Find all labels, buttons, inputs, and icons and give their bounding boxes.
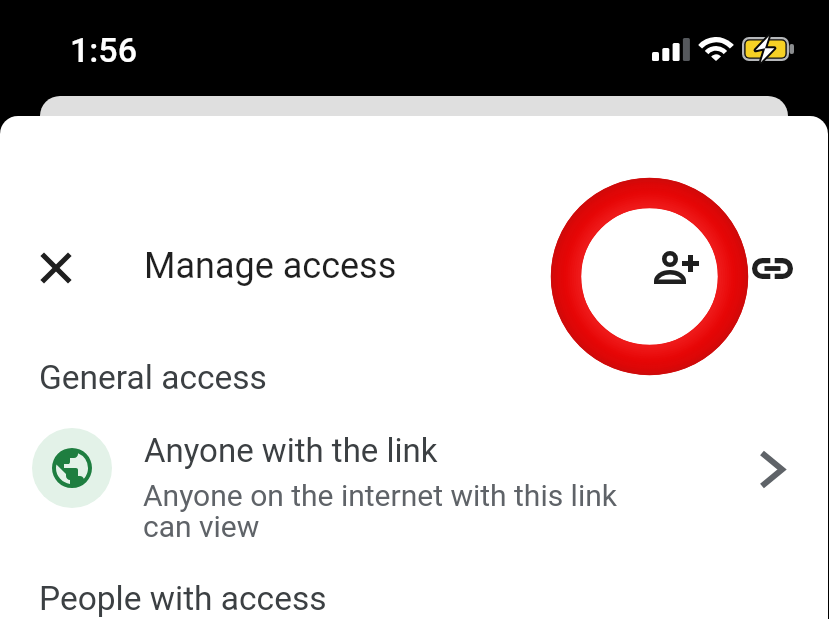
button[interactable]: Anyone with the link [0, 414, 828, 550]
button[interactable]: Add people [642, 234, 710, 302]
staticText: General access [39, 358, 267, 397]
staticText: Anyone with the link [144, 431, 438, 470]
staticText: Manage access [144, 245, 397, 287]
button[interactable]: Close [22, 234, 90, 302]
button[interactable]: Copy link [738, 234, 806, 302]
staticText: Anyone on the internet with this link ca… [143, 478, 643, 545]
staticText: 1:56 [70, 30, 137, 70]
staticText: People with access [39, 579, 327, 618]
